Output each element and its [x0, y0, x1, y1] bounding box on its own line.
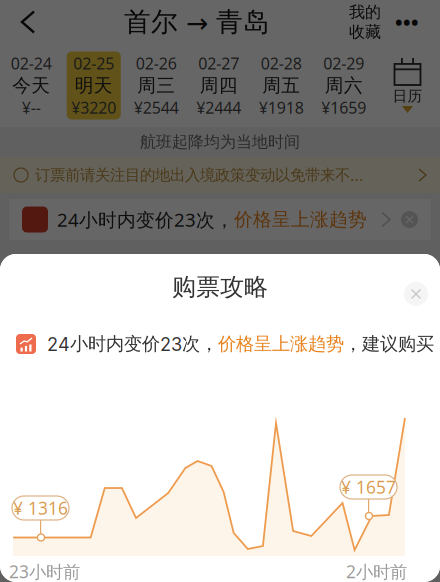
- staticText: 02-27: [198, 53, 239, 74]
- staticText: •••: [395, 9, 419, 35]
- staticText: 02-24: [11, 53, 52, 74]
- staticText: 价格呈上涨趋势: [234, 208, 367, 231]
- button[interactable]: Back: [9, 3, 47, 40]
- staticText: ¥1659: [321, 97, 366, 118]
- staticText: 24小时内变价23次，: [57, 207, 234, 232]
- button[interactable]: 02-26: [125, 44, 187, 127]
- staticText: 收藏: [349, 22, 381, 42]
- staticText: ¥ 1657: [341, 475, 396, 498]
- staticText: 周三: [137, 74, 175, 97]
- staticText: 02-26: [136, 53, 177, 74]
- staticText: 日历: [392, 87, 422, 105]
- button[interactable]: Close: [396, 274, 436, 314]
- button[interactable]: 02-29: [312, 44, 375, 127]
- staticText: ¥ 1316: [13, 496, 68, 519]
- staticText: ，建议购买: [344, 333, 434, 355]
- staticText: 2小时前: [346, 560, 407, 582]
- staticText: ¥2444: [196, 97, 241, 118]
- staticText: 周六: [325, 74, 363, 97]
- staticText: 24小时内变价23次，: [47, 333, 218, 355]
- staticText: 23小时前: [9, 560, 80, 582]
- staticText: 航班起降均为当地时间: [140, 132, 300, 152]
- button[interactable]: More: [383, 9, 431, 35]
- staticText: 订票前请关注目的地出入境政策变动以免带来不…: [35, 165, 363, 185]
- staticText: 今天: [12, 74, 50, 97]
- button[interactable]: 日历: [375, 44, 440, 127]
- button[interactable]: 02-28: [250, 44, 312, 127]
- button[interactable]: 我的: [347, 2, 383, 42]
- button[interactable]: 02-24: [0, 44, 62, 127]
- staticText: 周四: [200, 74, 238, 97]
- staticText: ¥1918: [259, 97, 304, 118]
- button[interactable]: 02-25: [62, 44, 125, 127]
- staticText: ¥2544: [134, 97, 179, 118]
- staticText: 周五: [262, 74, 300, 97]
- staticText: 02-29: [323, 53, 364, 74]
- staticText: 明天: [75, 74, 113, 97]
- staticText: ¥--: [22, 97, 41, 118]
- staticText: 我的: [349, 2, 381, 22]
- staticText: 02-28: [261, 53, 302, 74]
- staticText: ¥3220: [71, 97, 116, 118]
- staticText: 购票攻略: [172, 272, 268, 302]
- button[interactable]: 02-27: [187, 44, 250, 127]
- staticText: 02-25: [73, 53, 114, 74]
- staticText: 首尔 → 青岛: [124, 6, 270, 38]
- staticText: 价格呈上涨趋势: [218, 333, 344, 355]
